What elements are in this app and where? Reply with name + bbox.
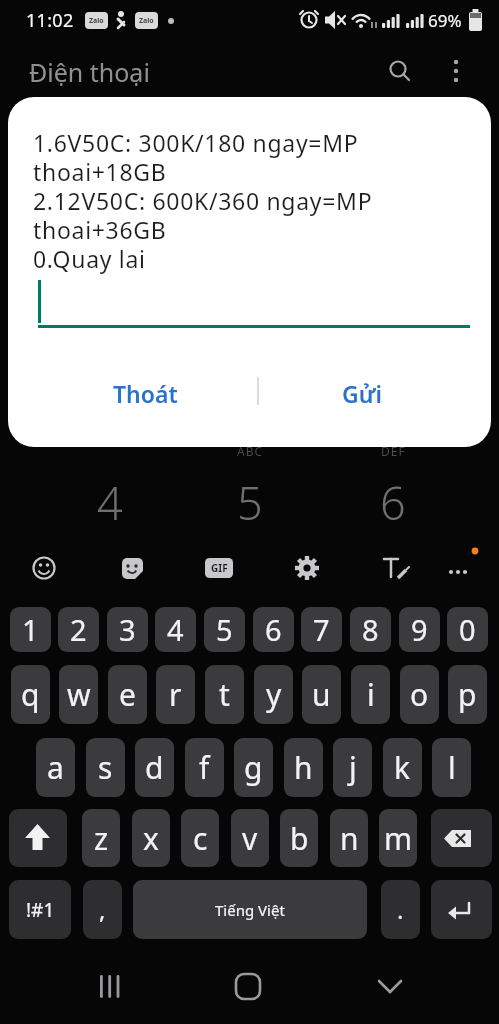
button[interactable] [85,960,133,1008]
staticText: i [367,674,375,715]
button[interactable]: Thoát [85,374,205,412]
staticText: 5 [237,472,263,528]
button[interactable] [199,548,239,588]
staticText: ABC [237,443,264,459]
button[interactable]: 1 [10,607,51,652]
staticText: b [290,818,309,859]
button[interactable]: h [284,738,323,797]
button[interactable]: n [330,809,368,867]
button[interactable] [431,880,492,939]
staticText: w [67,674,91,715]
staticText: Gửi [342,378,382,409]
staticText: x [143,818,159,859]
staticText: 1 [22,610,39,649]
button[interactable]: d [135,738,174,797]
button[interactable]: 8 [350,607,391,652]
staticText: 7 [313,610,330,649]
staticText: 3 [119,610,136,649]
staticText: 1.6V50C: 300K/180 ngay=MP thoai+18GB 2.1… [33,127,373,275]
button[interactable]: o [400,665,439,724]
button[interactable] [438,548,478,588]
button[interactable]: 2 [58,607,99,652]
button[interactable]: f [185,738,224,797]
staticText: h [294,747,313,788]
staticText: 4 [167,610,184,649]
button[interactable]: b [280,809,318,867]
button[interactable]: . [381,880,420,939]
staticText: f [199,747,210,788]
button[interactable] [9,809,67,867]
staticText: Zalo [89,16,104,26]
button[interactable]: !#1 [9,880,71,939]
button[interactable]: s [86,738,125,797]
button[interactable] [374,548,414,588]
button[interactable]: 9 [399,607,440,652]
staticText: c [193,818,208,859]
button[interactable]: g [234,738,273,797]
button[interactable]: 6 [253,607,294,652]
button[interactable]: 3 [107,607,148,652]
button[interactable] [366,960,414,1008]
button[interactable] [24,548,64,588]
staticText: y [266,674,282,715]
button[interactable] [224,960,272,1008]
button[interactable]: c [181,809,219,867]
button[interactable]: y [254,665,293,724]
button[interactable]: i [351,665,390,724]
button[interactable]: Tiếng Việt [133,880,367,939]
button[interactable]: z [82,809,120,867]
button[interactable] [287,548,327,588]
button[interactable]: m [379,809,417,867]
staticText: o [410,674,429,715]
staticText: Tiếng Việt [215,900,285,920]
staticText: j [349,747,357,788]
staticText: Zalo [139,16,154,26]
staticText: 11:02 [26,8,74,33]
button[interactable]: q [11,665,50,724]
staticText: q [21,674,40,715]
button[interactable] [431,809,492,867]
staticText: GIF [211,561,228,575]
staticText: s [98,747,113,788]
staticText: , [99,893,106,926]
button[interactable] [112,548,152,588]
staticText: z [94,818,109,859]
button[interactable]: r [156,665,195,724]
staticText: e [119,674,136,715]
staticText: !#1 [26,897,55,923]
button[interactable]: w [59,665,98,724]
staticText: v [242,818,258,859]
button[interactable]: 0 [447,607,488,652]
button[interactable]: p [448,665,487,724]
button[interactable]: x [132,809,170,867]
staticText: d [145,747,164,788]
button[interactable]: Gửi [302,374,422,412]
staticText: Điện thoại [29,55,150,89]
staticText: 6 [380,472,406,528]
button[interactable]: 5 [204,607,245,652]
staticText: k [394,747,411,788]
staticText: t [219,674,230,715]
button[interactable]: u [302,665,341,724]
button[interactable]: 7 [301,607,342,652]
staticText: u [312,674,331,715]
staticText: 0 [459,610,476,649]
button[interactable] [436,52,476,92]
staticText: 4 [97,472,123,528]
staticText: l [448,747,456,788]
button[interactable]: k [383,738,422,797]
staticText: DEF [381,443,406,459]
button[interactable]: e [108,665,147,724]
staticText: 2 [70,610,87,649]
button[interactable]: t [205,665,244,724]
staticText: 8 [362,610,379,649]
button[interactable]: l [432,738,471,797]
button[interactable] [380,52,420,92]
button[interactable]: , [83,880,122,939]
button[interactable]: j [333,738,372,797]
button[interactable]: a [36,738,75,797]
button[interactable]: v [231,809,269,867]
staticText: r [169,674,182,715]
staticText: Thoát [113,378,178,409]
button[interactable]: 4 [155,607,196,652]
